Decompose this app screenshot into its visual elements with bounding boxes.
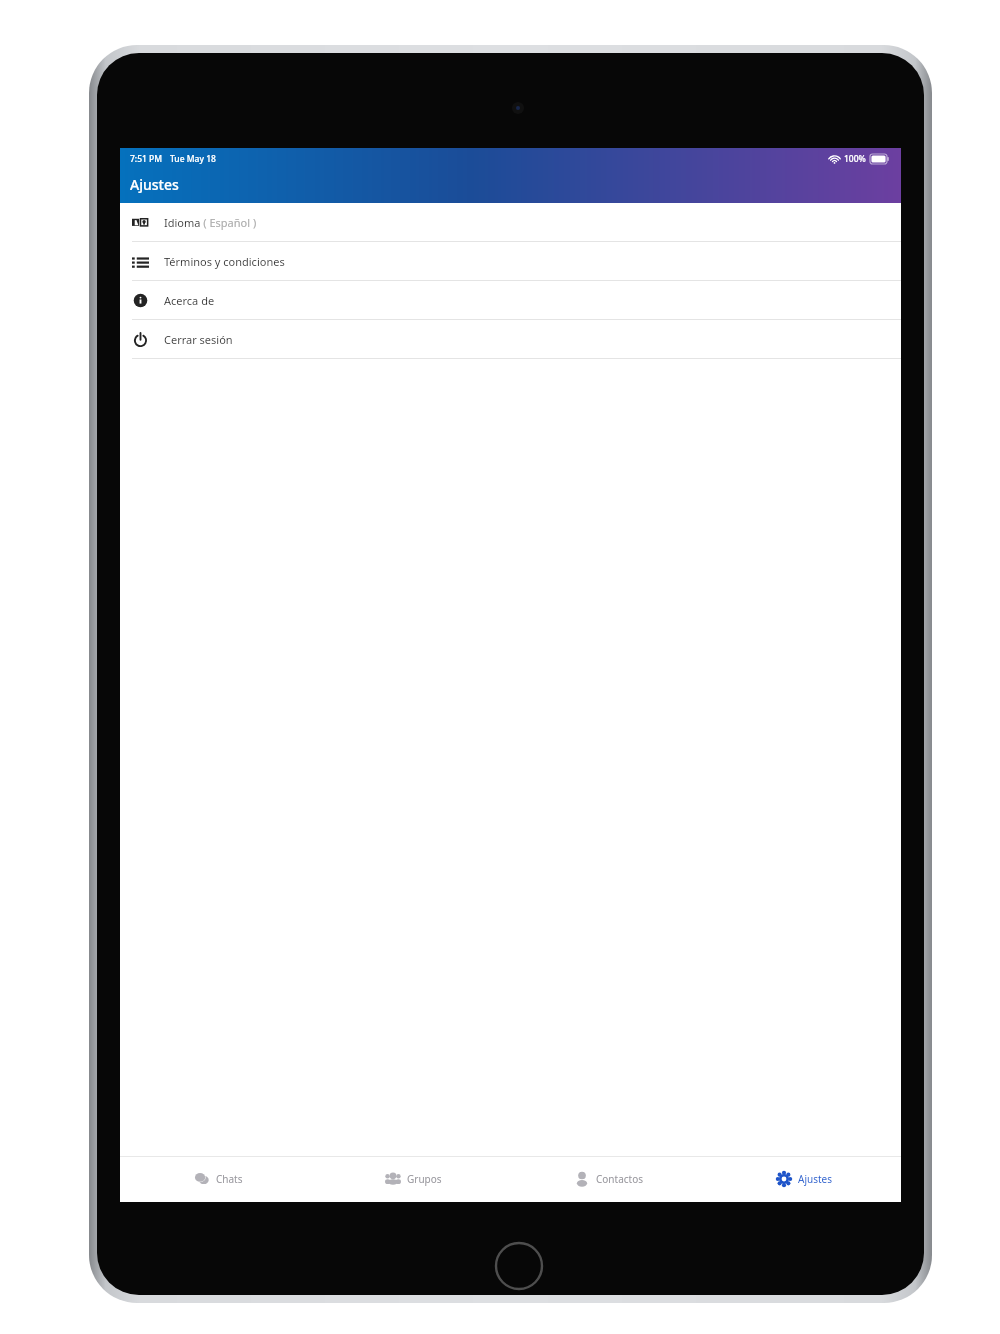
button[interactable]: Términos y condiciones <box>120 242 901 280</box>
button[interactable]: Ajustes <box>706 1156 901 1202</box>
staticText: Términos y condiciones <box>164 254 285 269</box>
staticText: Idioma ( Español ) <box>164 215 257 230</box>
staticText: Grupos <box>407 1172 442 1186</box>
staticText: Chats <box>216 1172 243 1186</box>
staticText: 100% <box>844 153 866 165</box>
staticText: Ajustes <box>130 175 179 194</box>
staticText: Ajustes <box>798 1172 832 1186</box>
button[interactable]: Idioma ( Español ) <box>120 203 901 241</box>
staticText: Tue May 18 <box>170 153 216 165</box>
button[interactable]: Acerca de <box>120 281 901 319</box>
button[interactable]: Grupos <box>316 1156 511 1202</box>
button[interactable]: Chats <box>120 1156 316 1202</box>
staticText: Contactos <box>596 1172 644 1186</box>
button[interactable]: Contactos <box>511 1156 706 1202</box>
staticText: Cerrar sesión <box>164 332 233 347</box>
button[interactable]: Cerrar sesión <box>120 320 901 358</box>
staticText: Acerca de <box>164 293 215 308</box>
staticText: 7:51 PM <box>130 153 163 165</box>
